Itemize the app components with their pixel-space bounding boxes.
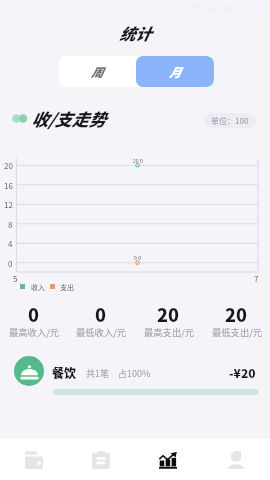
staticText: 最低支出/元 — [212, 325, 263, 338]
staticText: 最高支出/元 — [144, 325, 195, 338]
staticText: 12 — [4, 199, 13, 211]
staticText: -¥20 — [229, 364, 256, 381]
staticText: 16 — [4, 180, 13, 192]
button[interactable]: Wallet — [0, 439, 67, 480]
button[interactable]: 周 — [59, 56, 136, 87]
staticText: 月 — [169, 63, 182, 80]
staticText: 共1笔 — [86, 367, 109, 380]
staticText: 0.0 — [134, 254, 141, 261]
staticText: 20 — [157, 301, 179, 327]
button[interactable]: 餐饮 — [0, 352, 270, 398]
staticText: 周 — [91, 63, 104, 80]
staticText: 占100% — [118, 367, 151, 380]
staticText: 4 — [8, 238, 13, 250]
staticText: 最低收入/元 — [76, 325, 127, 338]
staticText: 5 — [13, 273, 18, 285]
staticText: 0 — [28, 301, 39, 327]
staticText: 20 — [4, 160, 13, 172]
staticText: 收入 — [31, 282, 45, 291]
staticText: 餐饮 — [52, 364, 77, 381]
staticText: 20.0 — [133, 157, 143, 164]
button[interactable]: Profile — [202, 439, 270, 480]
button[interactable]: Statistics — [134, 439, 202, 480]
staticText: 0 — [95, 301, 106, 327]
staticText: 7 — [254, 273, 259, 285]
button[interactable]: 月 — [136, 56, 214, 87]
button[interactable]: 单位：100 — [204, 113, 256, 128]
staticText: 最高收入/元 — [9, 325, 60, 338]
staticText: 0 — [8, 258, 13, 270]
staticText: 统计 — [119, 21, 152, 44]
staticText: 20 — [225, 301, 247, 327]
staticText: 支出 — [60, 282, 74, 291]
staticText: 收/支走势 — [31, 106, 106, 131]
button[interactable]: Records — [67, 439, 134, 480]
staticText: 8 — [8, 219, 13, 231]
staticText: 单位：100 — [211, 115, 249, 127]
